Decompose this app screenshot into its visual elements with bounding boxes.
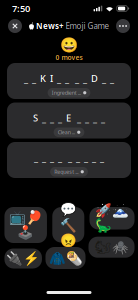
staticText: 🧥🌯 xyxy=(48,250,82,266)
staticText: News+ xyxy=(36,21,64,31)
button[interactable]: More options xyxy=(113,17,133,35)
button[interactable]: _ _ _ _ xyxy=(7,142,131,178)
staticText: Ingredient ... xyxy=(52,89,81,96)
staticText: Request ... xyxy=(54,168,78,175)
staticText: 📺🏓 xyxy=(9,209,43,225)
button[interactable]: Emoji clue xyxy=(45,247,85,269)
staticText: _ _ _ _ xyxy=(77,112,105,124)
staticText: S _ _ _ E xyxy=(33,112,71,124)
staticText: 🚀🗻🦕 xyxy=(95,203,129,234)
button[interactable]: Emoji clue xyxy=(89,207,134,230)
staticText: 💬 xyxy=(60,202,77,217)
button[interactable]: Emoji clue xyxy=(4,207,47,243)
button[interactable]: _ _ K I _ _ xyxy=(7,63,131,99)
button[interactable]: S _ _ _ E xyxy=(7,102,131,138)
staticText: 🔌⚡ xyxy=(6,251,40,266)
staticText: Emoji Game xyxy=(65,21,109,31)
staticText: 🐿🕷️ xyxy=(94,240,128,255)
button[interactable]: Emoji clue xyxy=(52,207,84,243)
staticText: _ _ D _ _ xyxy=(75,72,114,85)
button[interactable]: Emoji clue xyxy=(88,237,134,258)
staticText: 0 moves xyxy=(55,53,82,62)
staticText: _ _ _ _ _ xyxy=(68,151,104,164)
button[interactable]: Emoji clue xyxy=(4,248,42,268)
staticText: 🔨😠 xyxy=(60,217,77,248)
staticText: 😀 xyxy=(60,36,78,53)
staticText: Clean ... xyxy=(58,129,75,136)
staticText: _ _ K I _ _ xyxy=(24,72,69,85)
staticText: _ _ _ _ xyxy=(34,151,62,164)
staticText: 7:50 xyxy=(12,2,30,15)
button[interactable]: Close xyxy=(5,17,25,35)
staticText: 🕹️ xyxy=(17,225,34,240)
